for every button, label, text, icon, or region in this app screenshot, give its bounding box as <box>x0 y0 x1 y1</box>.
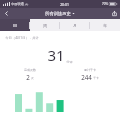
staticText: 年 <box>103 23 107 28</box>
button[interactable]: 年 <box>90 19 120 31</box>
button[interactable]: 日 <box>0 19 30 31</box>
button[interactable]: Share <box>108 8 120 19</box>
staticText: 今日（4月1日），共计 <box>5 35 39 40</box>
button[interactable]: 完成次数 <box>0 68 60 81</box>
button[interactable]: Back <box>0 8 12 19</box>
staticText: 月 <box>73 23 77 28</box>
staticText: 周 <box>43 23 47 28</box>
button[interactable]: 周 <box>30 19 60 31</box>
staticText: 2 <box>26 73 30 81</box>
button[interactable]: 所有训练历史 <box>45 11 75 16</box>
staticText: 所有训练历史 <box>45 11 71 16</box>
staticText: 31 <box>47 45 65 65</box>
staticText: 中国联通 <box>11 2 24 6</box>
staticText: 日 <box>13 23 17 28</box>
staticText: 千卡 <box>93 76 99 80</box>
staticText: 累计千卡 <box>84 68 96 72</box>
staticText: 完成次数 <box>24 68 36 72</box>
staticText: 20:01 <box>60 2 69 7</box>
staticText: 次 <box>31 76 34 80</box>
staticText: 分钟 <box>66 60 73 64</box>
button[interactable]: 累计千卡 <box>60 68 120 81</box>
button[interactable]: 月 <box>60 19 90 31</box>
staticText: 244 <box>81 73 92 81</box>
staticText: 70% <box>102 2 108 6</box>
